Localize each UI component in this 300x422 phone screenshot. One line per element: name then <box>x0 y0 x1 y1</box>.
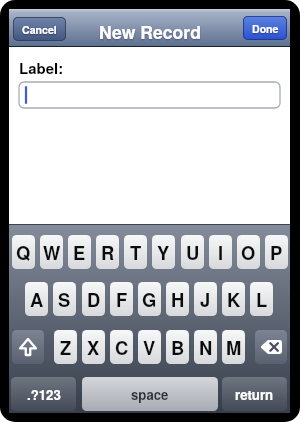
staticText: H <box>171 286 185 312</box>
button[interactable]: H <box>166 282 189 316</box>
button[interactable]: P <box>265 235 288 269</box>
staticText: Z <box>60 334 72 360</box>
staticText: Q <box>16 239 31 265</box>
staticText: T <box>130 239 142 265</box>
staticText: Cancel <box>22 22 57 37</box>
button[interactable]: W <box>40 235 63 269</box>
staticText: J <box>200 286 211 312</box>
staticText: K <box>227 286 241 312</box>
staticText: I <box>218 239 224 265</box>
staticText: return <box>235 385 274 404</box>
button[interactable]: R <box>96 235 119 269</box>
button[interactable]: Backspace <box>255 330 287 364</box>
staticText: C <box>115 334 129 360</box>
button[interactable]: J <box>194 282 217 316</box>
button[interactable]: O <box>237 235 260 269</box>
staticText: L <box>256 286 268 312</box>
staticText: space <box>131 385 169 404</box>
button[interactable]: N <box>194 330 217 364</box>
button[interactable]: space <box>82 377 218 411</box>
button[interactable]: I <box>209 235 232 269</box>
button[interactable]: Cancel <box>13 17 66 41</box>
staticText: E <box>73 239 86 265</box>
staticText: New Record <box>99 19 201 44</box>
button[interactable]: E <box>68 235 91 269</box>
staticText: .?123 <box>27 385 61 404</box>
button[interactable]: F <box>110 282 133 316</box>
staticText: M <box>226 334 242 360</box>
button[interactable]: B <box>166 330 189 364</box>
button[interactable]: V <box>138 330 161 364</box>
staticText: D <box>87 286 101 312</box>
staticText: G <box>142 286 157 312</box>
staticText: W <box>43 239 61 265</box>
button[interactable]: C <box>110 330 133 364</box>
button[interactable]: Y <box>152 235 175 269</box>
staticText: A <box>30 286 44 312</box>
staticText: N <box>199 334 213 360</box>
button[interactable]: G <box>138 282 161 316</box>
staticText: Label: <box>19 57 64 78</box>
staticText: O <box>241 239 256 265</box>
button[interactable] <box>19 82 280 108</box>
button[interactable]: S <box>53 282 76 316</box>
staticText: P <box>270 239 283 265</box>
staticText: S <box>58 286 71 312</box>
button[interactable]: Shift <box>12 330 44 364</box>
staticText: V <box>143 334 156 360</box>
button[interactable]: .?123 <box>11 377 76 411</box>
button[interactable]: return <box>222 377 287 411</box>
button[interactable]: Z <box>54 330 77 364</box>
button[interactable]: Done <box>243 16 287 40</box>
staticText: U <box>186 239 200 265</box>
button[interactable]: X <box>82 330 105 364</box>
button[interactable]: Q <box>12 235 35 269</box>
staticText: R <box>101 239 115 265</box>
staticText: X <box>87 334 100 360</box>
staticText: F <box>116 286 128 312</box>
button[interactable]: T <box>124 235 147 269</box>
button[interactable]: U <box>181 235 204 269</box>
button[interactable]: D <box>82 282 105 316</box>
staticText: Done <box>252 21 279 36</box>
staticText: Y <box>157 239 170 265</box>
button[interactable]: L <box>250 282 273 316</box>
button[interactable]: M <box>222 330 245 364</box>
button[interactable]: A <box>25 282 48 316</box>
button[interactable]: K <box>222 282 245 316</box>
staticText: B <box>171 334 185 360</box>
